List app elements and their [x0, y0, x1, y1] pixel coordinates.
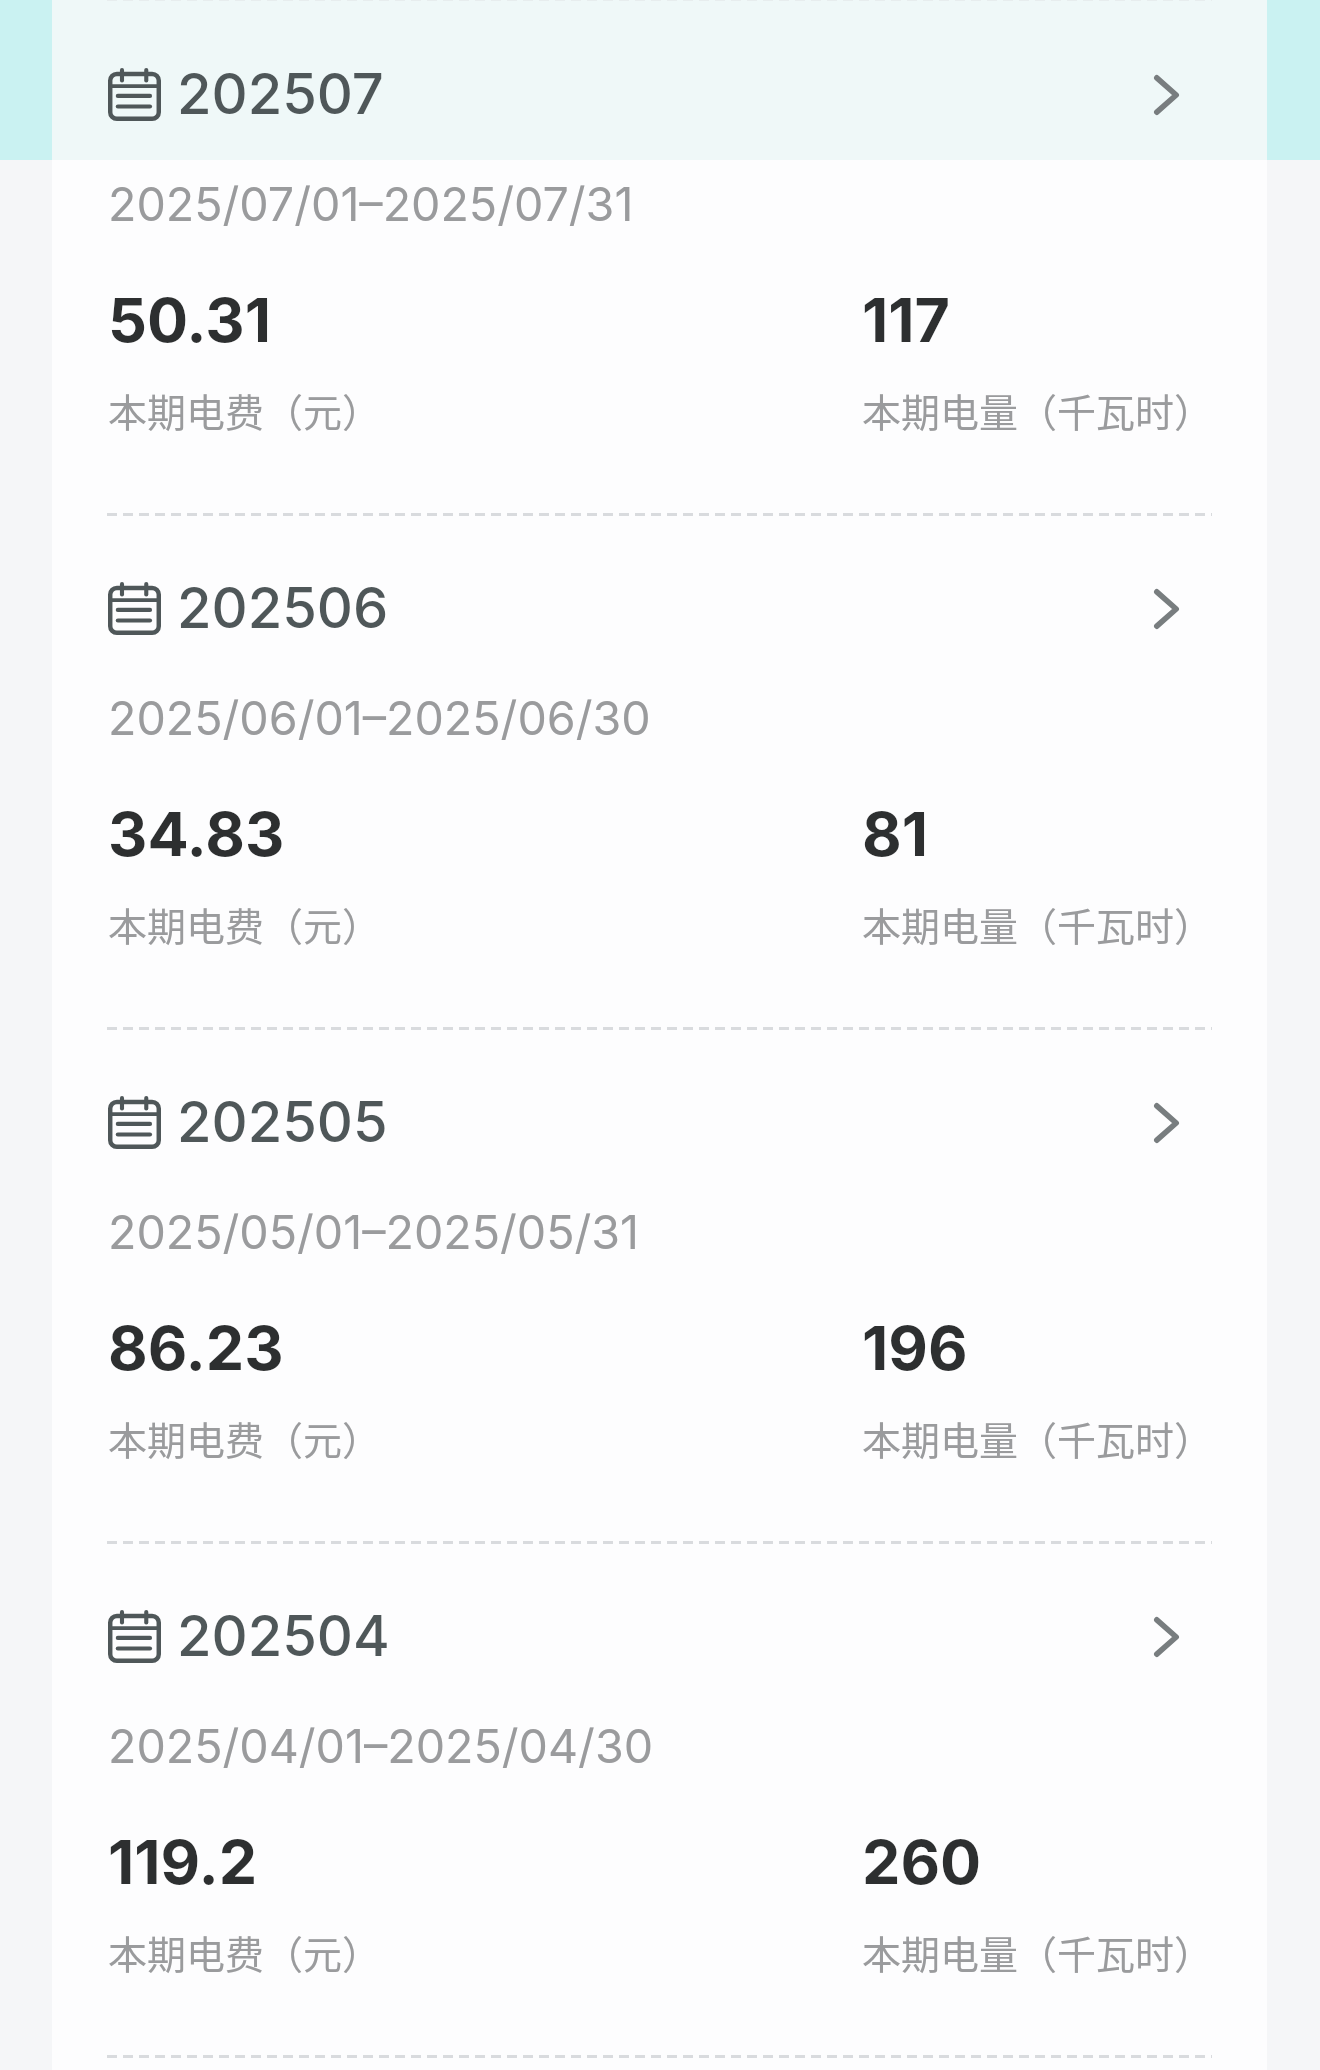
staticText: 34.83 [108, 797, 285, 859]
staticText: 本期电费（元） [108, 896, 382, 952]
staticText: 202507 [177, 60, 384, 128]
staticText: 119.2 [108, 1825, 258, 1887]
staticText: 2025/04/01–2025/04/30 [108, 1718, 654, 1774]
staticText: 本期电量（千瓦时） [862, 382, 1214, 438]
staticText: 202505 [177, 1088, 388, 1156]
staticText: 2025/07/01–2025/07/31 [108, 176, 634, 232]
staticText: 2025/06/01–2025/06/30 [108, 690, 651, 746]
other: View bill details [1154, 1103, 1179, 1143]
other: View bill details [1154, 589, 1179, 629]
staticText: 81 [862, 797, 929, 859]
staticText: 2025/05/01–2025/05/31 [108, 1204, 640, 1260]
button[interactable]: 202507 [52, 0, 1267, 160]
staticText: 本期电量（千瓦时） [862, 1410, 1214, 1466]
staticText: 202504 [177, 1602, 390, 1670]
button[interactable]: 202504 [52, 1541, 1267, 1702]
staticText: 260 [862, 1825, 982, 1887]
staticText: 本期电费（元） [108, 1410, 382, 1466]
other: View bill details [1154, 75, 1179, 115]
staticText: 86.23 [108, 1311, 284, 1373]
other: View bill details [1154, 1617, 1179, 1657]
button[interactable]: 202505 [52, 1027, 1267, 1188]
staticText: 202506 [177, 574, 389, 642]
button[interactable]: 202506 [52, 513, 1267, 674]
staticText: 本期电量（千瓦时） [862, 896, 1214, 952]
staticText: 50.31 [108, 283, 271, 345]
staticText: 本期电费（元） [108, 1924, 382, 1980]
staticText: 本期电量（千瓦时） [862, 1924, 1214, 1980]
staticText: 196 [862, 1311, 968, 1373]
staticText: 117 [862, 283, 951, 345]
staticText: 本期电费（元） [108, 382, 382, 438]
